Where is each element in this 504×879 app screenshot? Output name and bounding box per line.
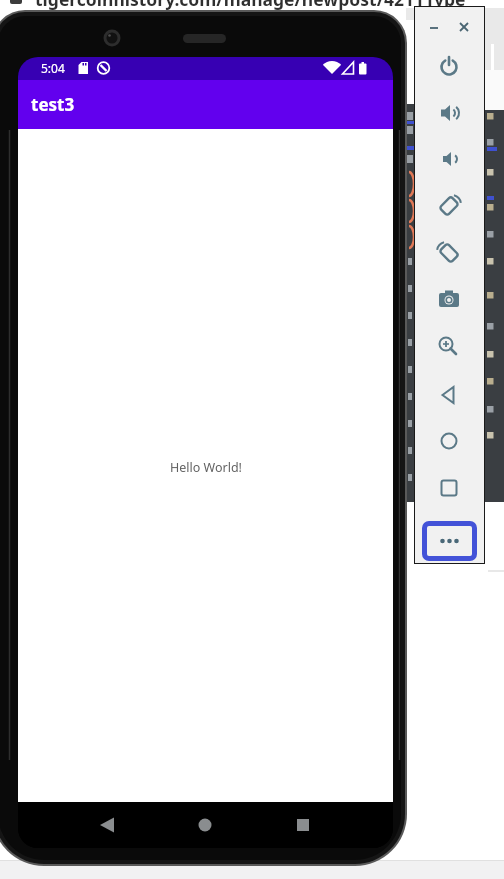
button[interactable] bbox=[431, 377, 467, 413]
button[interactable] bbox=[431, 470, 467, 506]
button[interactable] bbox=[431, 95, 467, 131]
button[interactable] bbox=[431, 188, 467, 224]
button[interactable] bbox=[431, 423, 467, 459]
staticText: 5:04 bbox=[41, 60, 65, 76]
button[interactable] bbox=[425, 18, 443, 36]
button[interactable] bbox=[431, 235, 467, 271]
staticText: tigercoinhistory.com/manage/newpost/4211… bbox=[35, 0, 466, 11]
staticText: test3 bbox=[31, 93, 75, 116]
button[interactable]: test3 bbox=[18, 80, 393, 129]
button[interactable] bbox=[431, 48, 467, 84]
button[interactable] bbox=[87, 805, 127, 845]
button[interactable] bbox=[422, 521, 477, 561]
button[interactable] bbox=[283, 805, 323, 845]
staticText: Hello World! bbox=[170, 459, 242, 476]
button[interactable] bbox=[431, 281, 467, 317]
button[interactable] bbox=[455, 18, 473, 36]
button[interactable] bbox=[431, 329, 467, 365]
button[interactable] bbox=[185, 805, 225, 845]
button[interactable] bbox=[431, 141, 467, 177]
